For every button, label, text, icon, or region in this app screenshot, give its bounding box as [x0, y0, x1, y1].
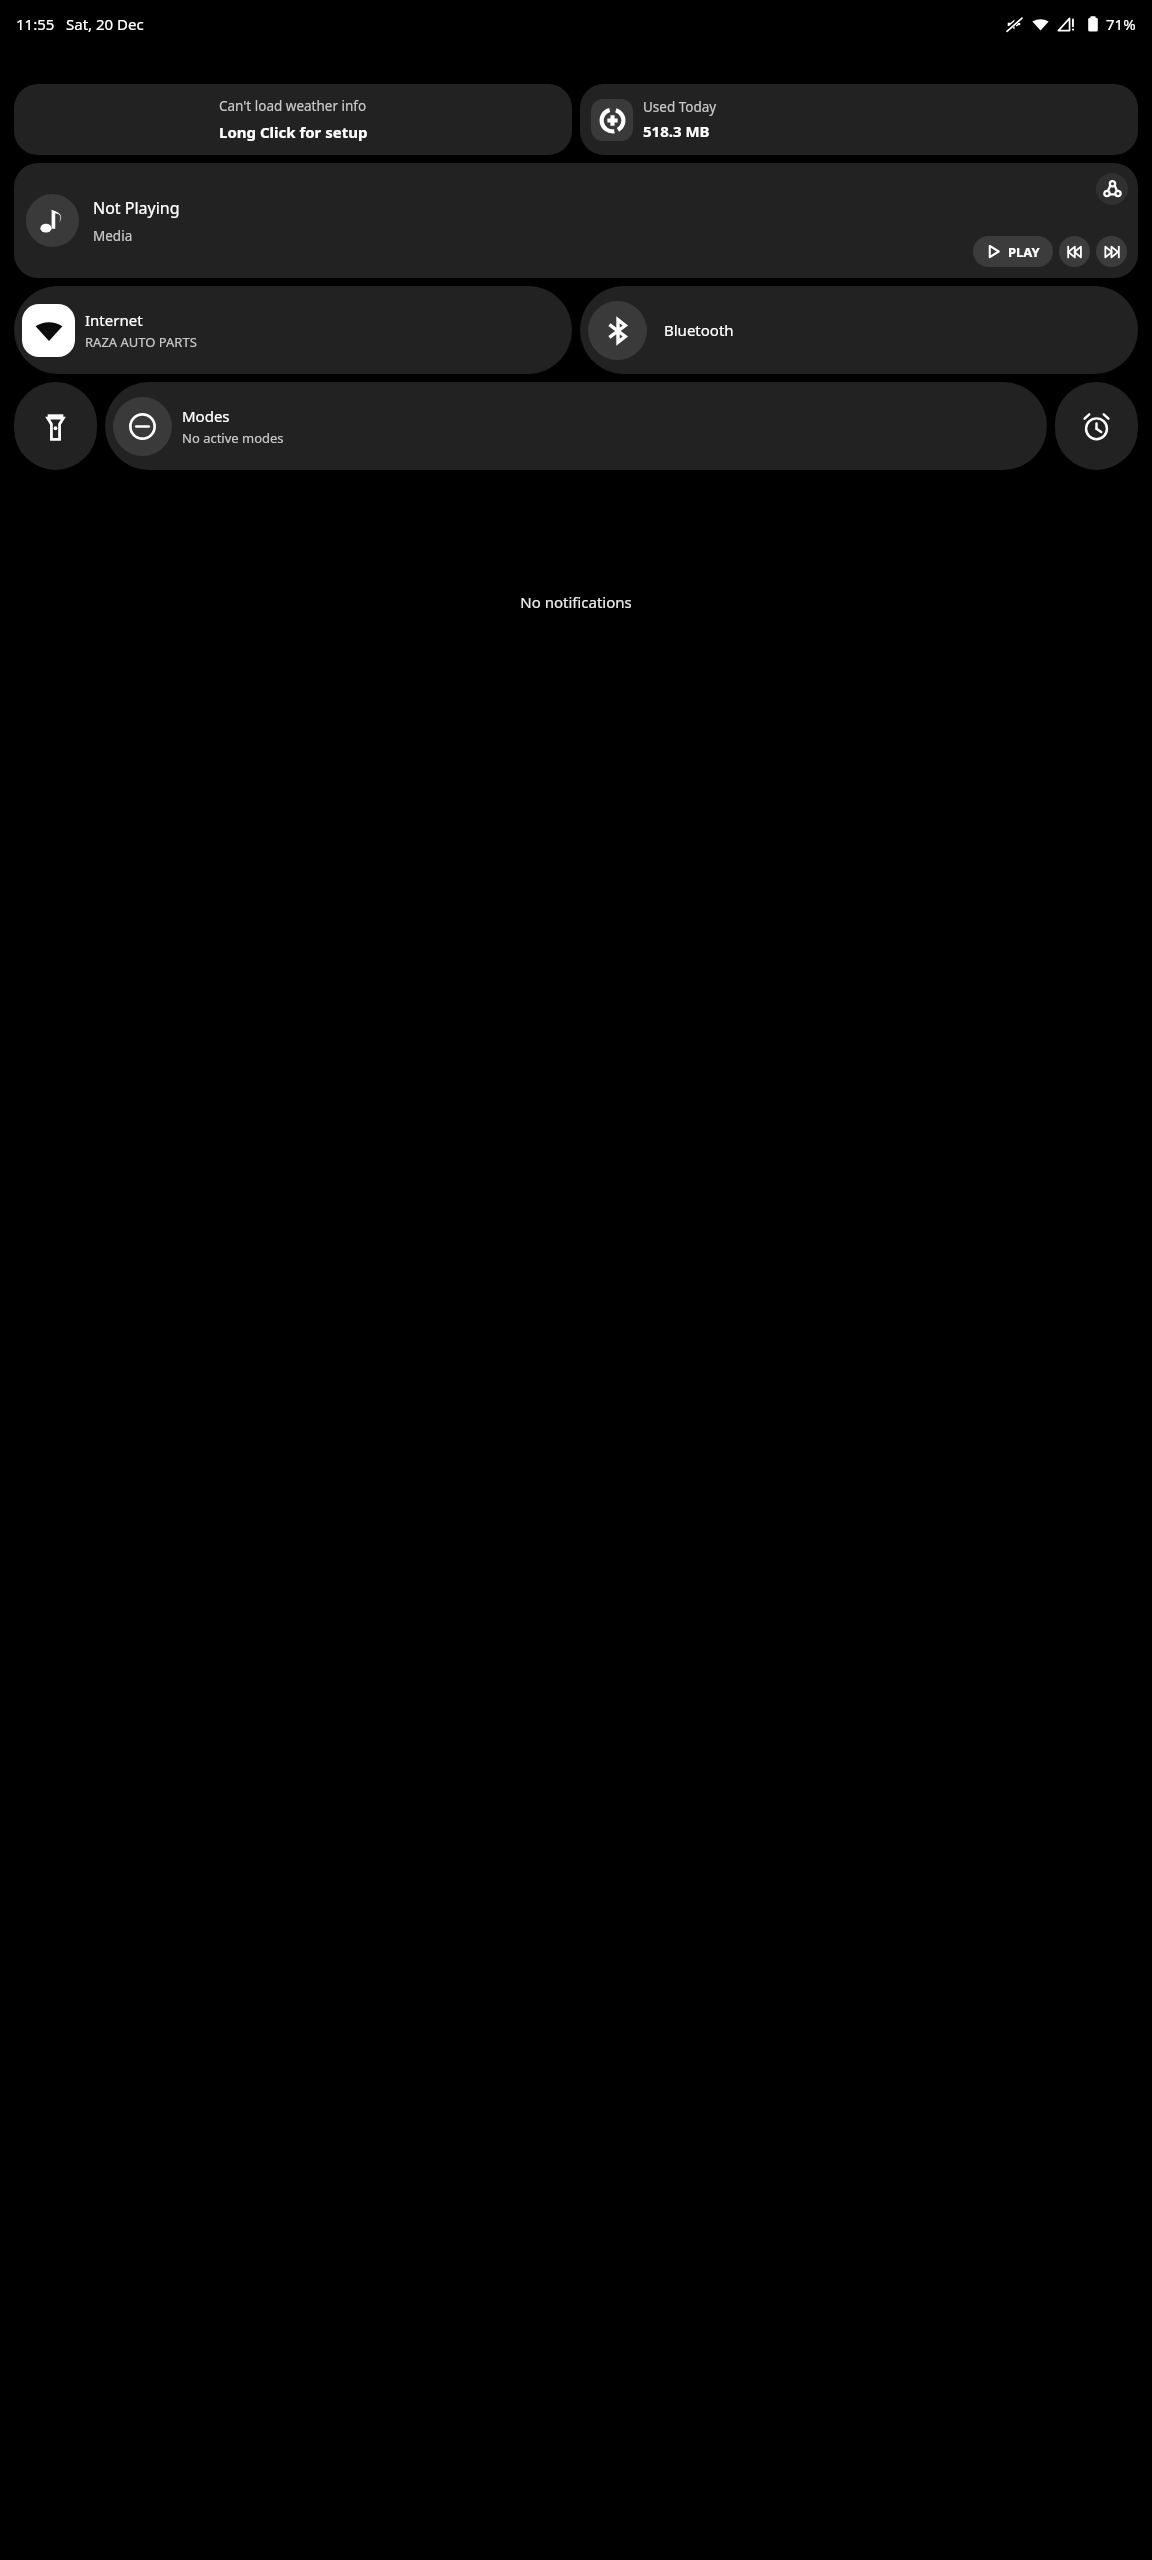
button[interactable]: Not Playing [14, 163, 1138, 278]
button[interactable]: Modes [105, 382, 1047, 470]
staticText: Media [93, 227, 133, 245]
button[interactable]: Cast output [1096, 173, 1128, 205]
staticText: Internet [85, 310, 143, 330]
staticText: PLAY [1008, 243, 1040, 261]
staticText: No notifications [520, 592, 632, 612]
button[interactable]: PLAY [973, 236, 1053, 267]
staticText: Can't load weather info [219, 97, 367, 115]
button[interactable]: Next [1096, 236, 1127, 267]
button[interactable]: Internet [14, 286, 572, 374]
staticText: RAZA AUTO PARTS [85, 333, 197, 351]
staticText: Modes [182, 406, 230, 426]
button[interactable]: Alarm [1055, 382, 1138, 470]
staticText: No active modes [182, 429, 284, 447]
staticText: Not Playing [93, 197, 180, 219]
staticText: Bluetooth [664, 320, 734, 340]
button[interactable]: Used Today [580, 84, 1138, 155]
staticText: 518.3 MB [643, 121, 710, 141]
staticText: 11:55 [16, 14, 55, 34]
button[interactable]: Can't load weather info [14, 84, 572, 155]
staticText: Used Today [643, 98, 717, 116]
button[interactable]: Flashlight [14, 382, 97, 470]
staticText: 71% [1106, 14, 1136, 34]
staticText: Long Click for setup [219, 122, 368, 142]
staticText: Sat, 20 Dec [66, 14, 144, 34]
button[interactable]: Bluetooth [580, 286, 1138, 374]
button[interactable]: Previous [1059, 236, 1090, 267]
